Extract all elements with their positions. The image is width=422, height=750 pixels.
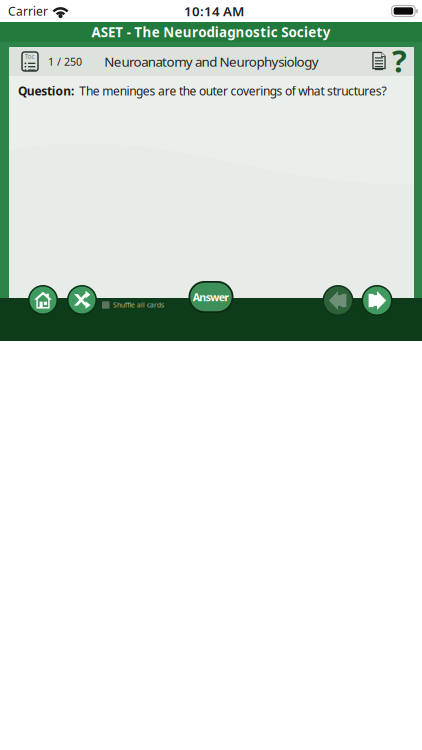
staticText: ASET - The Neurodiagnostic Society [91,23,331,41]
button[interactable]: Shuffle all cards [102,298,164,312]
button[interactable]: Answer [188,281,233,313]
staticText: Toc [25,52,35,61]
staticText: Question: The meninges are the outer cov… [18,83,386,99]
button[interactable]: Next card [361,285,392,316]
button[interactable]: Previous card [322,285,353,316]
staticText: Shuffle all cards [113,301,164,309]
staticText: ? [392,40,407,81]
button[interactable]: Shuffle [67,285,97,315]
staticText: Carrier [8,3,48,19]
button[interactable]: Table of contents [19,47,41,76]
staticText: 10:14 AM [184,2,244,20]
staticText: Neuroanatomy and Neurophysiology [104,53,319,70]
staticText: Answer [193,290,229,304]
button[interactable]: Home [28,285,58,315]
staticText: 1 / 250 [48,54,82,69]
button[interactable]: Notes [369,46,389,75]
button[interactable]: Help [392,46,407,75]
